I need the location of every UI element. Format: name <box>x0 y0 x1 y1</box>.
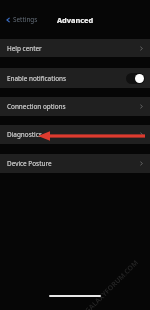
staticText: GALAXYFORUM.COM <box>83 258 141 310</box>
button[interactable]: Device Posture <box>0 154 150 173</box>
staticText: Settings <box>13 15 38 24</box>
button[interactable]: Connection options <box>0 97 150 116</box>
button[interactable]: Enable notifications <box>0 68 150 88</box>
staticText: Connection options <box>7 102 66 111</box>
staticText: Diagnostics <box>7 130 42 139</box>
staticText: Help center <box>7 44 42 53</box>
staticText: Advanced <box>57 15 94 25</box>
staticText: Enable notifications <box>7 74 67 83</box>
button[interactable]: Enable notifications <box>126 73 145 84</box>
button[interactable]: Settings <box>0 11 43 28</box>
button[interactable]: Help center <box>0 39 150 57</box>
staticText: Device Posture <box>7 159 52 168</box>
button[interactable]: Diagnostics <box>0 125 150 144</box>
